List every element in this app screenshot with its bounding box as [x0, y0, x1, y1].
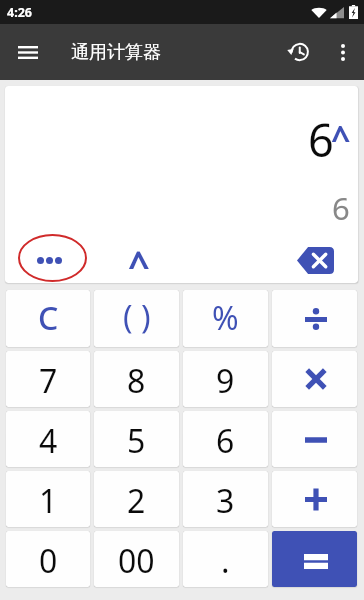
button[interactable]: 9 [183, 351, 268, 407]
button[interactable]: History [274, 28, 322, 76]
staticText: 5 [127, 419, 146, 463]
staticText: 6 [308, 109, 334, 170]
staticText: . [221, 539, 230, 583]
staticText: ^ [331, 115, 351, 161]
staticText: 8 [127, 359, 146, 403]
staticText: 通用计算器 [71, 41, 161, 64]
button[interactable]: 2 [94, 471, 179, 527]
staticText: 4:26 [7, 4, 32, 21]
staticText: 9 [216, 359, 235, 403]
staticText: ^ [128, 238, 150, 278]
staticText: 1 [39, 479, 58, 523]
button[interactable]: More options [322, 28, 364, 76]
staticText: ( ) [123, 295, 151, 339]
button[interactable]: ^ [116, 241, 162, 281]
button[interactable]: 4 [6, 411, 90, 467]
button[interactable]: Equals [272, 531, 357, 587]
staticText: 6 [216, 419, 235, 463]
button[interactable]: 5 [94, 411, 179, 467]
button[interactable]: Add [272, 471, 357, 527]
button[interactable]: ( ) [94, 290, 179, 347]
button[interactable]: Menu [0, 24, 56, 80]
button[interactable]: 8 [94, 351, 179, 407]
staticText: 3 [216, 479, 235, 523]
button[interactable]: % [183, 290, 268, 347]
button[interactable]: C [6, 290, 90, 347]
button[interactable]: More functions [25, 243, 73, 277]
button[interactable]: Multiply [272, 351, 357, 407]
button[interactable]: 1 [6, 471, 90, 527]
button[interactable]: 0 [6, 531, 90, 587]
staticText: 6 [332, 187, 350, 229]
button[interactable]: . [183, 531, 268, 587]
staticText: 7 [39, 359, 58, 403]
staticText: 00 [118, 539, 155, 583]
button[interactable]: Backspace [294, 243, 336, 277]
button[interactable]: 3 [183, 471, 268, 527]
button[interactable]: 00 [94, 531, 179, 587]
button[interactable]: 7 [6, 351, 90, 407]
staticText: 4 [39, 419, 58, 463]
staticText: C [38, 296, 59, 340]
staticText: 2 [127, 479, 146, 523]
button[interactable]: 6 [183, 411, 268, 467]
staticText: % [212, 296, 239, 340]
button[interactable]: Divide [272, 290, 357, 347]
button[interactable]: Subtract [272, 411, 357, 467]
staticText: 0 [39, 539, 58, 583]
